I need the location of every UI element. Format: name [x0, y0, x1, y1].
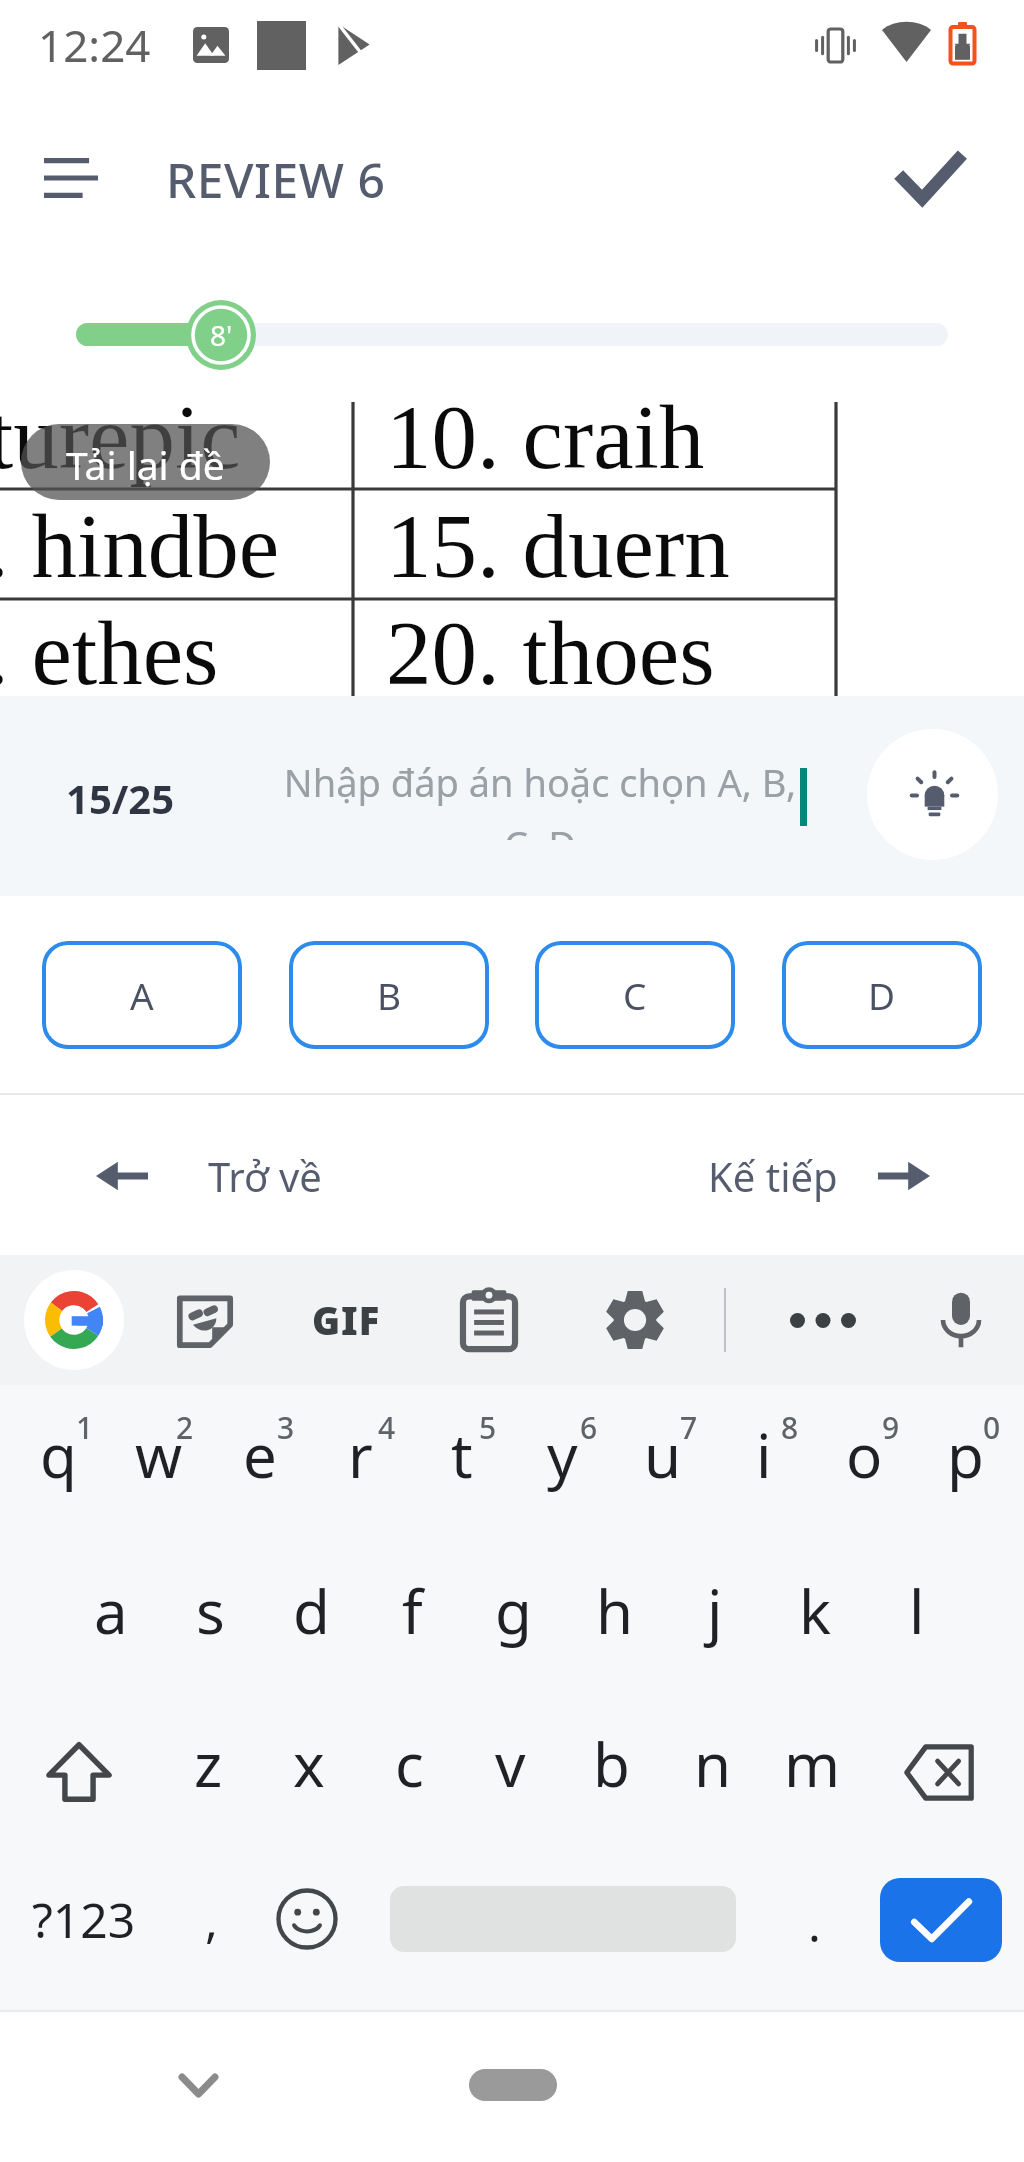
staticText: b — [593, 1723, 630, 1805]
button[interactable]: c — [359, 1675, 460, 1831]
button[interactable]: , — [165, 1843, 257, 1995]
button[interactable]: x — [258, 1675, 359, 1831]
staticText: 15/25 — [66, 771, 175, 825]
staticText: Trở về — [208, 1149, 322, 1203]
button[interactable]: Enter — [880, 1878, 1002, 1962]
staticText: s — [196, 1570, 225, 1652]
button[interactable]: A — [42, 941, 242, 1049]
button[interactable]: Trở về — [96, 1138, 322, 1214]
staticText: Nhập đáp án hoặc chọn A, B, C, D — [280, 756, 800, 840]
button[interactable]: 0 — [915, 1366, 1016, 1522]
staticText: w — [135, 1414, 183, 1496]
staticText: 5 — [479, 1407, 497, 1448]
button[interactable]: 7 — [612, 1366, 713, 1522]
staticText: r — [348, 1414, 373, 1496]
button[interactable]: 2 — [108, 1366, 209, 1522]
button[interactable]: g — [463, 1522, 564, 1678]
button[interactable]: 4 — [310, 1366, 411, 1522]
staticText: q — [40, 1414, 77, 1496]
button[interactable]: Hint — [867, 729, 998, 860]
button[interactable]: d — [261, 1522, 362, 1678]
button[interactable]: z — [158, 1675, 259, 1831]
button[interactable]: Menu — [18, 122, 124, 234]
staticText: 3 — [277, 1407, 295, 1448]
button[interactable]: j — [664, 1522, 765, 1678]
staticText: 1 — [76, 1407, 94, 1448]
staticText: 15. duern — [386, 496, 730, 597]
button[interactable]: n — [662, 1675, 763, 1831]
staticText: . ethes — [0, 603, 219, 704]
button[interactable]: b — [561, 1675, 662, 1831]
button[interactable]: Shift — [0, 1694, 158, 1850]
staticText: 9 — [882, 1407, 900, 1448]
button[interactable]: Clipboard — [444, 1275, 534, 1365]
staticText: f — [402, 1570, 423, 1652]
staticText: 4 — [378, 1407, 396, 1448]
staticText: REVIEW 6 — [166, 147, 386, 212]
button[interactable]: Voice input — [916, 1275, 1006, 1365]
button[interactable]: Tải lại đề — [21, 424, 270, 500]
button[interactable]: a — [60, 1522, 161, 1678]
staticText: i — [756, 1414, 772, 1496]
staticText: y — [547, 1414, 578, 1496]
staticText: GIF — [312, 1294, 381, 1346]
button[interactable]: D — [782, 941, 982, 1049]
button[interactable]: . — [768, 1843, 860, 1995]
button[interactable]: h — [564, 1522, 665, 1678]
button[interactable]: 8 — [713, 1366, 814, 1522]
button[interactable]: 1 — [8, 1366, 109, 1522]
button[interactable]: C — [535, 941, 735, 1049]
staticText: 6 — [580, 1407, 598, 1448]
button[interactable]: Home — [469, 2069, 557, 2101]
button[interactable]: Emoji — [260, 1843, 354, 1995]
button[interactable]: Timer 8 minutes — [186, 300, 256, 370]
staticText: ?123 — [32, 1887, 136, 1952]
staticText: k — [799, 1570, 832, 1652]
button[interactable]: Kế tiếp — [708, 1138, 930, 1214]
staticText: v — [495, 1723, 526, 1805]
staticText: 7 — [680, 1407, 698, 1448]
staticText: Kế tiếp — [708, 1149, 838, 1203]
button[interactable]: m — [762, 1675, 863, 1831]
staticText: . hindbe — [0, 496, 280, 597]
button[interactable]: 3 — [209, 1366, 310, 1522]
button[interactable]: Settings — [590, 1275, 680, 1365]
staticText: 8 — [781, 1407, 799, 1448]
staticText: a — [94, 1570, 128, 1652]
button[interactable]: f — [362, 1522, 463, 1678]
staticText: g — [495, 1570, 532, 1652]
staticText: d — [293, 1570, 330, 1652]
staticText: A — [130, 970, 154, 1020]
button[interactable]: Done — [880, 124, 980, 234]
button[interactable]: l — [866, 1522, 967, 1678]
button[interactable]: Hide keyboard — [158, 2045, 238, 2125]
button[interactable]: v — [460, 1675, 561, 1831]
button[interactable]: GIF — [300, 1275, 392, 1365]
staticText: 0 — [983, 1407, 1001, 1448]
staticText: C — [623, 970, 647, 1020]
staticText: z — [194, 1723, 223, 1805]
button[interactable]: 9 — [814, 1366, 915, 1522]
button[interactable]: More options — [778, 1275, 868, 1365]
button[interactable]: 5 — [411, 1366, 512, 1522]
staticText: c — [395, 1723, 424, 1805]
staticText: m — [784, 1723, 841, 1805]
button[interactable]: Google search — [24, 1270, 124, 1370]
button[interactable]: k — [765, 1522, 866, 1678]
staticText: B — [377, 970, 402, 1020]
button[interactable]: 6 — [512, 1366, 613, 1522]
staticText: e — [243, 1414, 277, 1496]
staticText: u — [644, 1414, 682, 1496]
staticText: Tải lại đề — [66, 438, 225, 491]
button[interactable]: s — [160, 1522, 261, 1678]
staticText: . — [808, 1891, 821, 1956]
button[interactable]: Backspace — [860, 1694, 1018, 1850]
button[interactable]: B — [289, 941, 489, 1049]
button[interactable]: Stickers — [160, 1275, 250, 1365]
staticText: l — [909, 1570, 925, 1652]
staticText: 8' — [210, 316, 233, 354]
button[interactable]: ?123 — [10, 1843, 158, 1995]
staticText: x — [293, 1723, 325, 1805]
staticText: j — [707, 1570, 723, 1652]
